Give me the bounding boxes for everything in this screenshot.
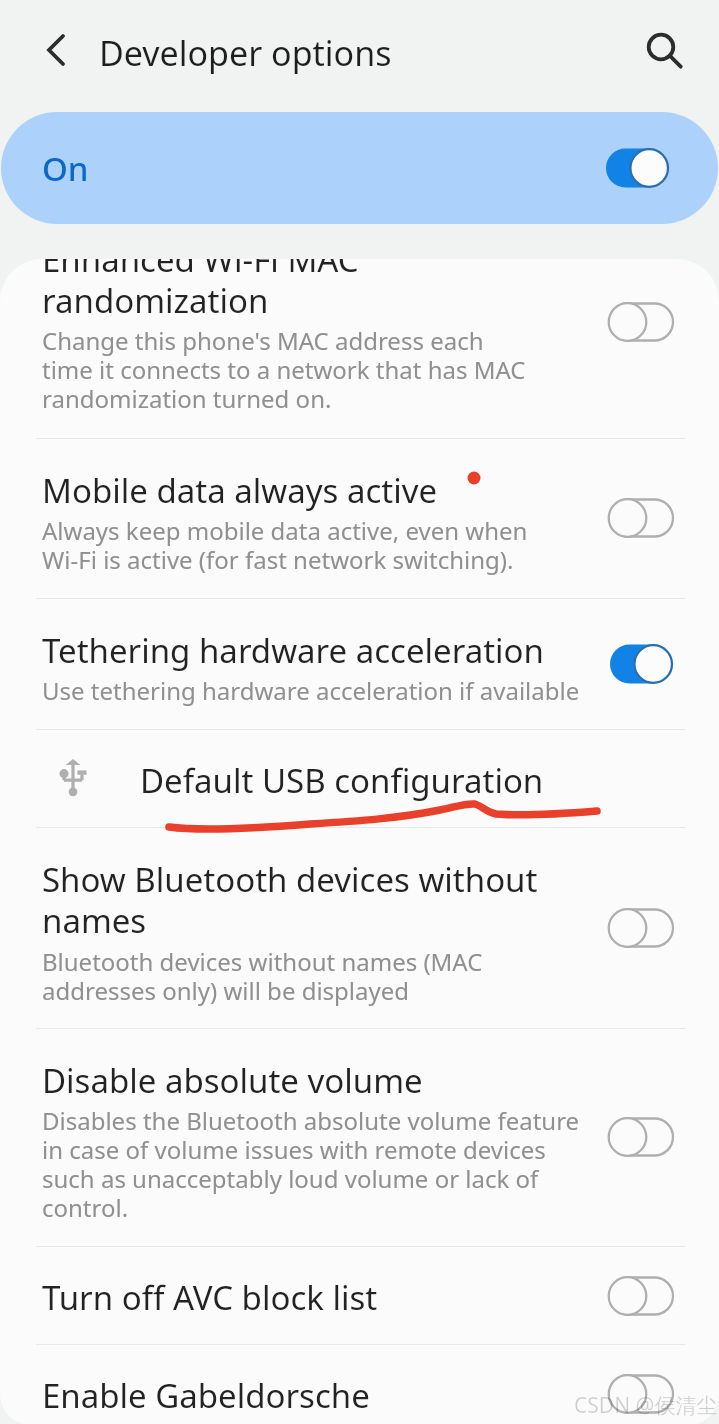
- button[interactable]: Turn off AVC block list: [0, 1247, 719, 1344]
- staticText: Bluetooth devices without names (MAC add…: [42, 945, 483, 1007]
- staticText: Enhanced Wi-Fi MAC randomization: [42, 259, 359, 323]
- button[interactable]: Tethering hardware acceleration: [0, 599, 719, 729]
- staticText: Mobile data always active: [42, 468, 438, 513]
- staticText: Disables the Bluetooth absolute volume f…: [42, 1104, 580, 1224]
- staticText: Developer options: [99, 30, 392, 76]
- staticText: Enable Gabeldorsche: [42, 1373, 370, 1418]
- button[interactable]: Show Bluetooth devices without names: [0, 828, 719, 1028]
- button[interactable]: Mobile data always active: [0, 439, 719, 598]
- button[interactable]: Enable Gabeldorsche: [0, 1345, 719, 1424]
- button[interactable]: On: [1, 112, 718, 224]
- staticText: On: [42, 146, 89, 191]
- staticText: Change this phone's MAC address each tim…: [42, 324, 526, 415]
- staticText: Always keep mobile data active, even whe…: [42, 514, 528, 576]
- button[interactable]: Enhanced Wi-Fi MAC randomization: [0, 259, 719, 438]
- staticText: Disable absolute volume: [42, 1058, 423, 1103]
- button[interactable]: Back: [34, 23, 90, 79]
- staticText: Use tethering hardware acceleration if a…: [42, 674, 580, 707]
- staticText: Default USB configuration: [140, 758, 544, 803]
- button[interactable]: Disable absolute volume: [0, 1029, 719, 1246]
- staticText: CSDN @侯清尘: [574, 1391, 718, 1420]
- staticText: Tethering hardware acceleration: [42, 628, 544, 673]
- button[interactable]: Search: [633, 22, 693, 82]
- button[interactable]: Default USB configuration: [0, 730, 719, 827]
- staticText: Show Bluetooth devices without names: [42, 857, 538, 943]
- staticText: Turn off AVC block list: [42, 1275, 378, 1320]
